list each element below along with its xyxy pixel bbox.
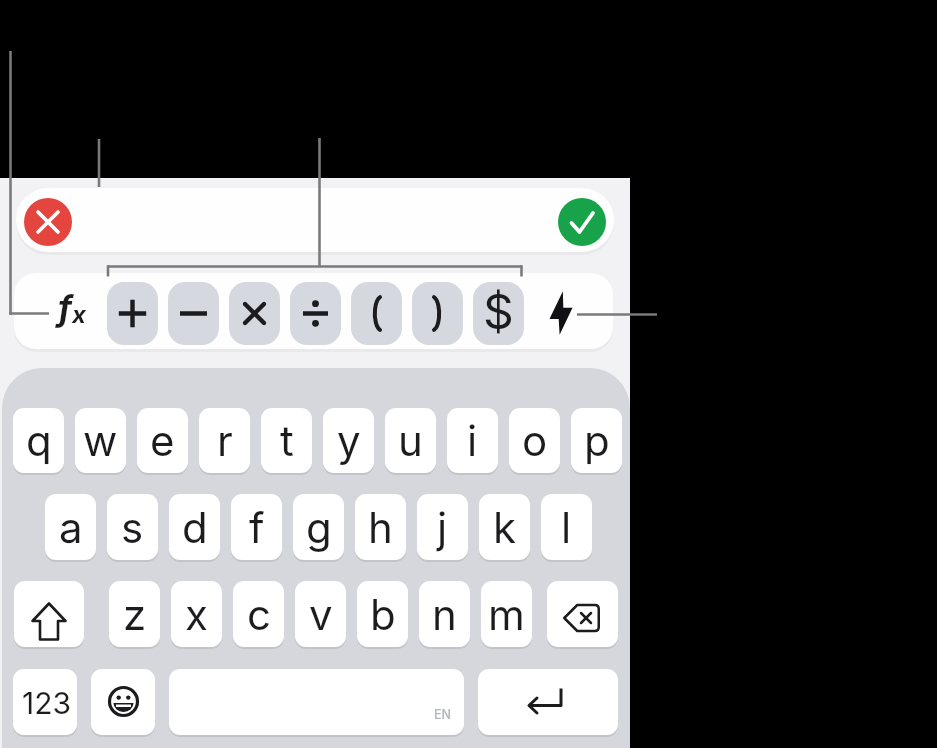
staticText: m — [488, 589, 525, 640]
staticText: i — [467, 415, 478, 466]
button[interactable]: f — [58, 287, 96, 335]
button[interactable]: w — [75, 408, 126, 473]
button[interactable] — [107, 282, 158, 345]
button[interactable] — [14, 581, 84, 647]
button[interactable]: f — [231, 494, 282, 560]
staticText: h — [368, 502, 393, 553]
button[interactable]: z — [109, 581, 160, 647]
staticText: w — [83, 415, 118, 466]
staticText: f — [58, 287, 72, 328]
button[interactable]: 123 — [13, 669, 77, 735]
button[interactable] — [412, 282, 463, 345]
staticText: b — [370, 589, 396, 640]
button[interactable]: j — [417, 494, 468, 560]
staticText: k — [493, 502, 517, 553]
staticText: s — [121, 502, 144, 553]
button[interactable]: i — [447, 408, 498, 473]
button[interactable]: m — [481, 581, 532, 647]
staticText: g — [306, 502, 332, 553]
staticText: y — [337, 415, 361, 466]
button[interactable]: o — [509, 408, 560, 473]
staticText: $ — [483, 282, 514, 340]
staticText: x — [72, 300, 86, 329]
button[interactable] — [169, 669, 464, 735]
button[interactable]: t — [261, 408, 312, 473]
button[interactable] — [91, 669, 155, 735]
button[interactable]: c — [233, 581, 284, 647]
button[interactable] — [478, 669, 618, 735]
staticText: v — [309, 589, 333, 640]
staticText: l — [561, 502, 572, 553]
button[interactable]: s — [107, 494, 158, 560]
button[interactable]: e — [137, 408, 188, 473]
staticText: d — [182, 502, 208, 553]
button[interactable]: a — [45, 494, 96, 560]
button[interactable] — [558, 198, 606, 246]
staticText: o — [522, 415, 548, 466]
staticText: p — [584, 415, 610, 466]
staticText: e — [150, 415, 175, 466]
button[interactable]: l — [541, 494, 592, 560]
button[interactable]: p — [571, 408, 622, 473]
button[interactable]: b — [357, 581, 408, 647]
staticText: EN — [434, 707, 451, 722]
button[interactable]: y — [323, 408, 374, 473]
button[interactable]: h — [355, 494, 406, 560]
button[interactable]: d — [169, 494, 220, 560]
button[interactable]: g — [293, 494, 344, 560]
staticText: z — [123, 589, 147, 640]
staticText: q — [26, 415, 52, 466]
button[interactable]: k — [479, 494, 530, 560]
button[interactable] — [24, 198, 72, 246]
staticText: c — [247, 589, 271, 640]
button[interactable] — [229, 282, 280, 345]
button[interactable]: u — [385, 408, 436, 473]
button[interactable]: $ — [473, 282, 524, 345]
button[interactable]: v — [295, 581, 346, 647]
button[interactable]: n — [419, 581, 470, 647]
staticText: x — [185, 589, 208, 640]
staticText: 123 — [22, 685, 72, 721]
button[interactable] — [290, 282, 341, 345]
staticText: n — [432, 589, 457, 640]
button[interactable] — [547, 581, 618, 647]
staticText: t — [280, 415, 294, 466]
button[interactable]: q — [13, 408, 64, 473]
button[interactable] — [168, 282, 219, 345]
button[interactable] — [351, 282, 402, 345]
button[interactable]: r — [199, 408, 250, 473]
staticText: a — [59, 502, 83, 553]
staticText: j — [437, 502, 448, 553]
button[interactable]: x — [171, 581, 222, 647]
staticText: u — [398, 415, 423, 466]
staticText: r — [217, 415, 233, 466]
button[interactable] — [538, 285, 584, 341]
staticText: f — [249, 502, 265, 553]
